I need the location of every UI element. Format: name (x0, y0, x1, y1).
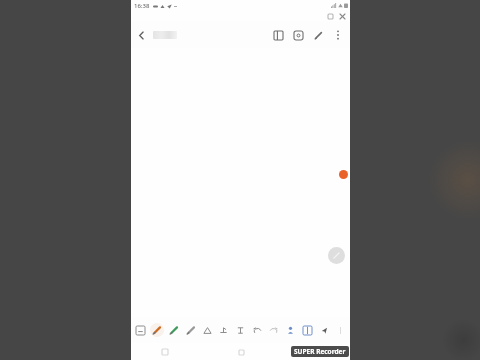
button[interactable]: Recents (157, 344, 173, 360)
button[interactable]: Pencil (183, 319, 198, 341)
button[interactable]: Pen tool (328, 247, 345, 264)
button[interactable]: Stop recording (326, 12, 334, 20)
button[interactable]: Pointer (317, 319, 332, 341)
staticText: 16:38 (134, 2, 150, 10)
button[interactable]: Select (283, 319, 298, 341)
button[interactable]: More tools (333, 319, 348, 341)
button[interactable]: Back (308, 344, 324, 360)
button[interactable]: Page layout (268, 25, 288, 45)
button[interactable]: Highlighter (166, 319, 181, 341)
button[interactable]: Close recorder (338, 12, 346, 20)
button[interactable]: Shapes (216, 319, 231, 341)
button[interactable]: Pen (149, 319, 164, 341)
button[interactable]: Redo (266, 319, 281, 341)
button[interactable]: Insert text (233, 319, 248, 341)
button[interactable]: More options (328, 25, 348, 45)
button[interactable]: Text mode (133, 319, 148, 341)
button[interactable]: Edit (308, 25, 328, 45)
button[interactable]: Undo (250, 319, 265, 341)
button[interactable]: Insert image (300, 319, 315, 341)
button[interactable]: Back (131, 25, 151, 45)
button[interactable]: Scan (288, 25, 308, 45)
button[interactable]: Eraser (200, 319, 215, 341)
button[interactable]: Home (233, 344, 249, 360)
staticText: SUPER Recorder (294, 347, 346, 356)
